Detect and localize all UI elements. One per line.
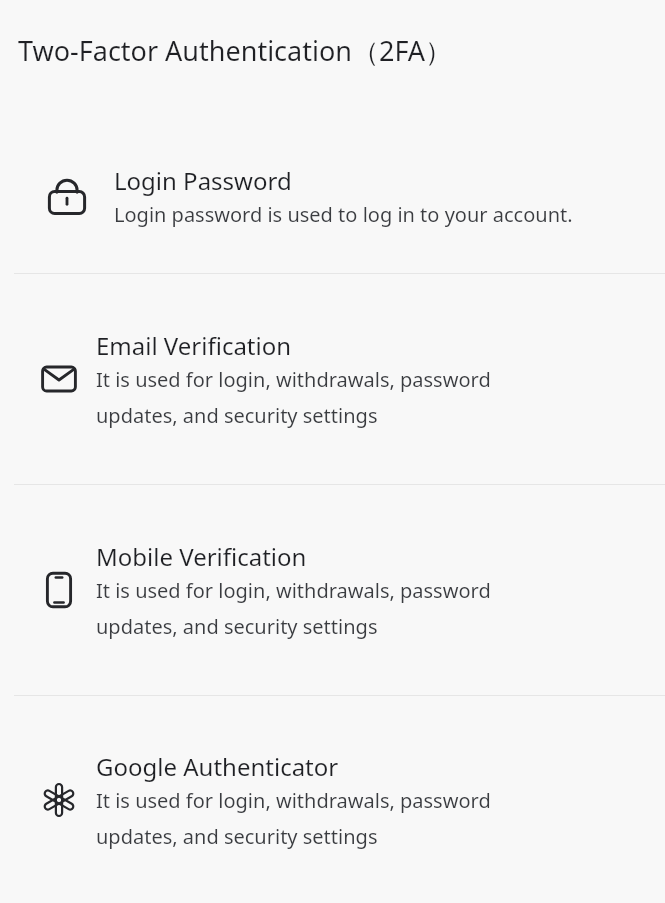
staticText: It is used for login, withdrawals, passw… (96, 366, 491, 429)
button[interactable]: Login password (0, 118, 665, 273)
button[interactable]: Google authenticator (0, 696, 665, 903)
button[interactable]: Email verification (0, 274, 665, 484)
other: Mobile verification (37, 568, 81, 612)
staticText: Two-Factor Authentication（2FA） (18, 32, 453, 69)
button[interactable]: Mobile verification (0, 485, 665, 695)
other: Login password (45, 174, 89, 218)
other: Email verification (37, 357, 81, 401)
staticText: It is used for login, withdrawals, passw… (96, 577, 491, 640)
staticText: Google Authenticator (96, 750, 339, 783)
staticText: Email Verification (96, 329, 292, 362)
staticText: It is used for login, withdrawals, passw… (96, 787, 491, 850)
staticText: Login password is used to log in to your… (114, 201, 573, 228)
staticText: Mobile Verification (96, 540, 307, 573)
staticText: Login Password (114, 164, 292, 197)
other: Google authenticator (37, 778, 81, 822)
